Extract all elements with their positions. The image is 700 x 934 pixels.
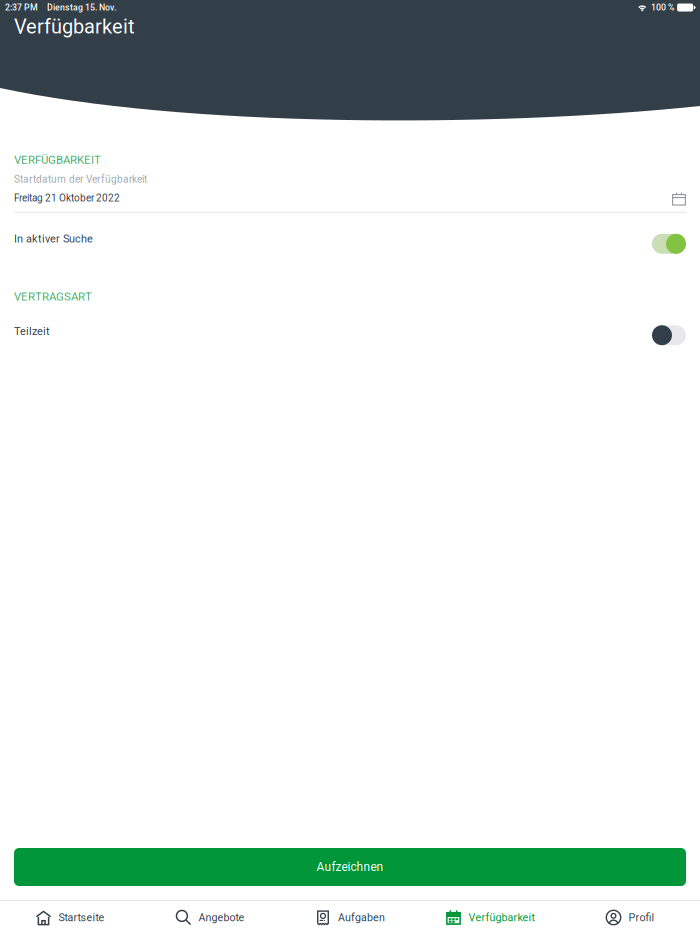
staticText: Angebote — [198, 911, 244, 924]
staticText: Verfügbarkeit — [14, 15, 135, 38]
staticText: Verfügbarkeit — [468, 911, 534, 924]
staticText: VERFÜGBARKEIT — [14, 153, 101, 166]
staticText: Startseite — [58, 911, 104, 924]
staticText: Dienstag 15. Nov. — [47, 2, 116, 13]
staticText: Freitag 21 Oktober 2022 — [14, 192, 120, 204]
staticText: In aktiver Suche — [14, 232, 93, 245]
staticText: Teilzeit — [14, 325, 50, 338]
staticText: VERTRAGSART — [14, 290, 92, 303]
button[interactable]: Profil — [560, 901, 700, 934]
staticText: Startdatum der Verfügbarkeit — [14, 173, 147, 185]
button[interactable]: Verfügbarkeit — [420, 901, 560, 934]
button[interactable]: Aktiv — [652, 234, 686, 254]
staticText: 2:37 PM — [5, 2, 38, 13]
button[interactable]: Datum auswählen — [672, 191, 686, 205]
button[interactable]: Inaktiv — [652, 325, 686, 345]
button[interactable]: Aufgaben — [280, 901, 420, 934]
staticText: Aufzeichnen — [316, 860, 383, 874]
button[interactable]: Startseite — [0, 901, 140, 934]
staticText: 100 % — [651, 2, 674, 13]
staticText: Aufgaben — [338, 911, 385, 924]
button[interactable]: Angebote — [140, 901, 280, 934]
staticText: Profil — [628, 911, 654, 924]
button[interactable]: Aufzeichnen — [14, 848, 686, 886]
